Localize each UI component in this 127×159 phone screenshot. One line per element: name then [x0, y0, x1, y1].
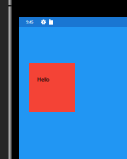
staticText: 9:45: [26, 19, 33, 25]
button[interactable]: Settings: [41, 19, 46, 24]
button[interactable]: Battery: [49, 19, 53, 24]
staticText: Hello: [37, 76, 49, 83]
button[interactable]: Hello: [29, 63, 75, 112]
